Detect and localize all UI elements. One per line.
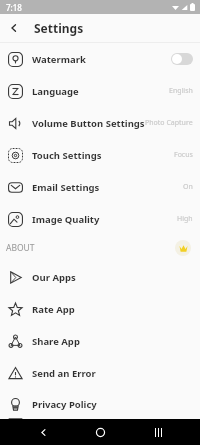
staticText: Focus [174, 150, 193, 160]
button[interactable]: Rate App [0, 293, 200, 325]
button[interactable]: Language [0, 75, 200, 107]
button[interactable]: Back [0, 14, 28, 42]
staticText: 7:18 [6, 2, 22, 13]
button[interactable]: Home [85, 419, 115, 445]
staticText: Rate App [32, 303, 193, 316]
button[interactable]: Premium [175, 240, 191, 256]
staticText: Image Quality [32, 213, 177, 226]
staticText: Language [32, 85, 169, 98]
button[interactable]: Our Apps [0, 261, 200, 293]
staticText: Watermark [32, 53, 171, 66]
staticText: English [169, 86, 193, 96]
button[interactable]: Send an Error [0, 357, 200, 389]
button[interactable]: Back [28, 419, 58, 445]
staticText: Photo Capture [145, 118, 193, 128]
staticText: Touch Settings [32, 149, 174, 162]
staticText: Send an Error [32, 367, 193, 380]
staticText: Share App [32, 335, 193, 348]
staticText: ABOUT [6, 242, 35, 254]
staticText: Privacy Policy [32, 398, 193, 411]
button[interactable]: Email Settings [0, 171, 200, 203]
button[interactable]: Watermark toggle [171, 53, 193, 65]
staticText: Settings [34, 20, 84, 36]
button[interactable]: Recent apps [143, 419, 173, 445]
button[interactable]: Touch Settings [0, 139, 200, 171]
staticText: On [183, 182, 193, 192]
button[interactable]: Watermark [0, 43, 200, 75]
button[interactable]: Privacy Policy [0, 389, 200, 419]
staticText: Volume Button Settings [32, 117, 145, 130]
staticText: Our Apps [32, 271, 193, 284]
button[interactable]: Share App [0, 325, 200, 357]
button[interactable]: Volume Button Settings [0, 107, 200, 139]
button[interactable]: Image Quality [0, 203, 200, 235]
staticText: High [177, 214, 193, 224]
staticText: Email Settings [32, 181, 183, 194]
